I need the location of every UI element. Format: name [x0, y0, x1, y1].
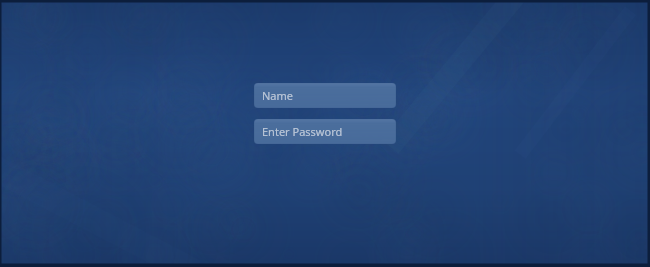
button[interactable]: Name field	[254, 83, 396, 108]
staticText: Name	[262, 88, 294, 103]
button[interactable]: Password field	[254, 119, 396, 144]
staticText: Enter Password	[262, 124, 343, 139]
